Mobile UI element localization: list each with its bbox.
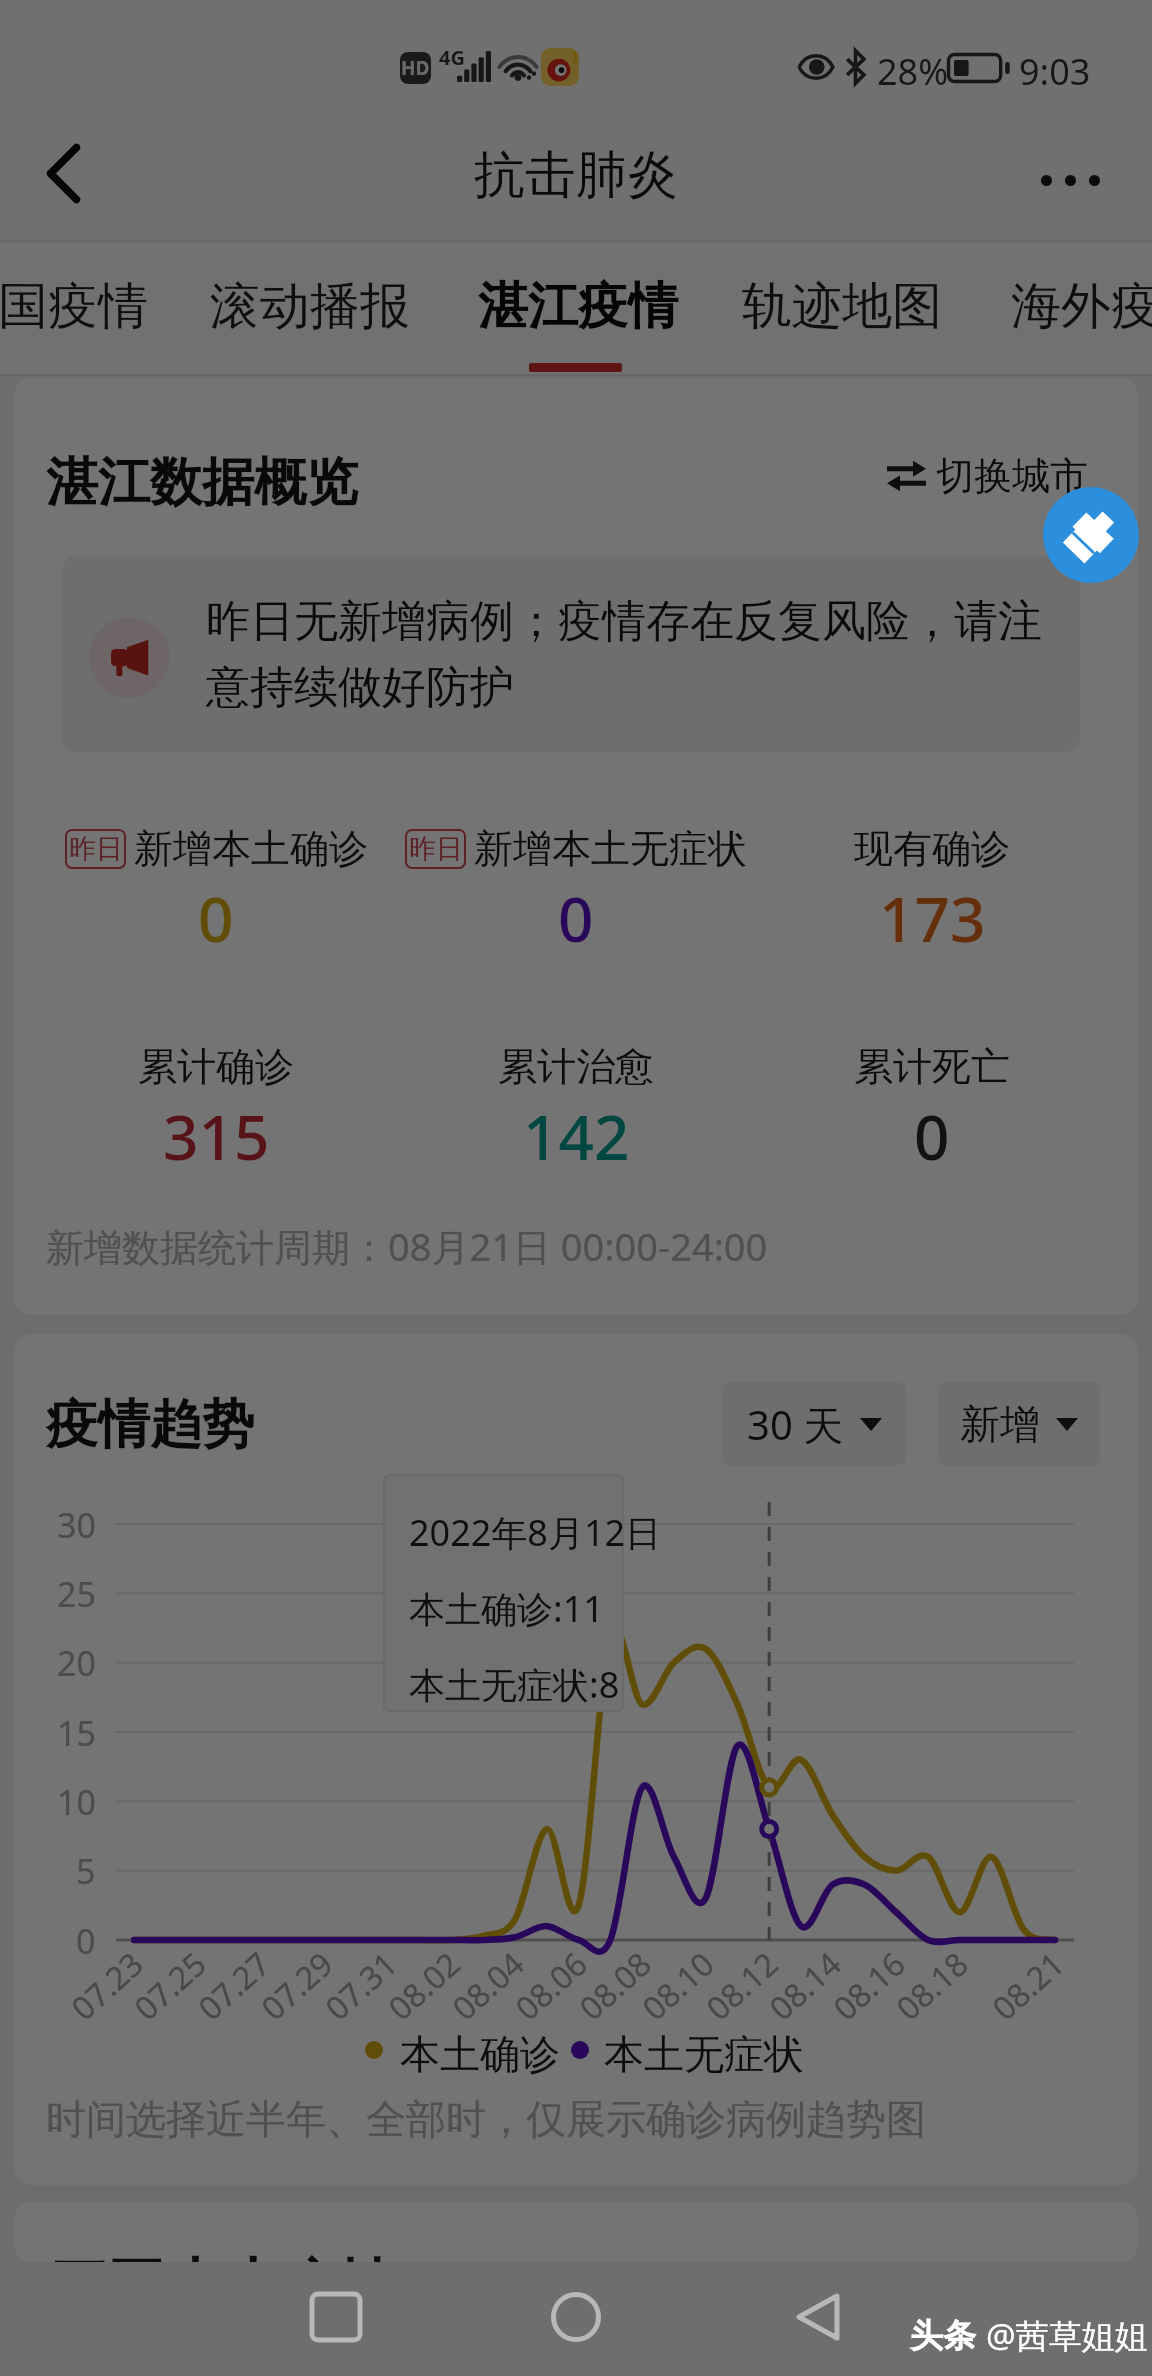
staticText: 25 — [57, 1571, 96, 1617]
staticText: 本土确诊:11 — [409, 1584, 604, 1633]
staticText: 0 — [914, 1094, 950, 1178]
staticText: 三亚本土疫情 — [50, 2250, 398, 2262]
staticText: 08.06 — [506, 1942, 596, 2030]
button[interactable]: Clear cache — [1043, 487, 1139, 583]
staticText: @茜草姐姐 — [986, 2313, 1148, 2358]
staticText: 30 天 — [747, 1397, 844, 1452]
staticText: 5 — [76, 1848, 96, 1894]
staticText: 0 — [558, 876, 594, 960]
staticText: 08.18 — [887, 1942, 977, 2030]
staticText: 本土无症状 — [604, 2029, 804, 2079]
staticText: 08.21 — [983, 1942, 1073, 2030]
staticText: 累计确诊 — [138, 1042, 294, 1091]
staticText: 昨日 — [409, 832, 463, 866]
staticText: 07.29 — [252, 1942, 342, 2030]
staticText: 15 — [57, 1710, 96, 1756]
button[interactable]: 滚动播报 — [190, 243, 430, 374]
staticText: 08.08 — [570, 1942, 660, 2030]
staticText: 07.27 — [189, 1942, 279, 2030]
staticText: 9:03 — [1019, 47, 1091, 96]
staticText: 本土确诊 — [400, 2029, 560, 2079]
button[interactable]: Recent apps — [281, 2262, 391, 2372]
staticText: 新增 — [960, 1399, 1040, 1449]
button[interactable]: 海外疫 — [966, 243, 1152, 374]
staticText: 本土无症状:8 — [409, 1660, 620, 1709]
staticText: 抗击肺炎 — [474, 143, 678, 207]
staticText: 昨日无新增病例；疫情存在反复风险，请注意持续做好防护 — [206, 594, 1054, 715]
button[interactable]: More options — [1020, 135, 1120, 213]
staticText: 国疫情 — [0, 275, 148, 338]
staticText: 142 — [523, 1094, 630, 1178]
staticText: 0 — [198, 876, 234, 960]
button[interactable]: 湛江疫情 — [458, 243, 698, 374]
staticText: 现有确诊 — [854, 824, 1010, 873]
staticText: 28% — [877, 47, 949, 96]
button[interactable]: 30 天 — [722, 1382, 906, 1466]
staticText: 湛江疫情 — [478, 275, 678, 338]
staticText: 08.12 — [697, 1942, 787, 2030]
staticText: 轨迹地图 — [742, 275, 942, 338]
button[interactable]: 国疫情 — [0, 243, 193, 374]
staticText: 累计治愈 — [498, 1042, 654, 1091]
staticText: 滚动播报 — [210, 275, 410, 338]
staticText: 累计死亡 — [854, 1042, 1010, 1091]
staticText: 海外疫 — [1011, 275, 1152, 338]
staticText: 08.16 — [824, 1942, 914, 2030]
staticText: 疫情趋势 — [46, 1392, 254, 1458]
button[interactable]: Home — [521, 2262, 631, 2372]
staticText: 新增本土确诊 — [134, 824, 368, 873]
staticText: 08.10 — [633, 1942, 723, 2030]
staticText: 30 — [57, 1502, 96, 1548]
staticText: 0 — [76, 1918, 96, 1964]
staticText: 湛江数据概览 — [46, 450, 358, 516]
staticText: 昨日 — [69, 832, 123, 866]
staticText: 新增数据统计周期：08月21日 00:00-24:00 — [46, 1220, 768, 1272]
button[interactable]: 切换城市 — [887, 448, 1088, 504]
staticText: 315 — [163, 1094, 270, 1178]
button[interactable]: Back — [763, 2262, 873, 2372]
staticText: 2022年8月12日 — [409, 1508, 662, 1557]
staticText: 头条 — [910, 2315, 976, 2357]
staticText: 08.14 — [760, 1942, 850, 2030]
staticText: 4G — [439, 44, 465, 71]
staticText: 时间选择近半年、全部时，仅展示确诊病例趋势图 — [46, 2094, 926, 2144]
button[interactable]: 新增 — [938, 1382, 1100, 1466]
staticText: 07.23 — [62, 1942, 152, 2030]
staticText: 08.02 — [379, 1942, 469, 2030]
staticText: HD — [401, 55, 430, 81]
staticText: 切换城市 — [936, 452, 1088, 500]
staticText: 07.31 — [316, 1942, 406, 2030]
staticText: 10 — [57, 1779, 96, 1825]
staticText: 20 — [57, 1640, 96, 1686]
staticText: 07.25 — [125, 1942, 215, 2030]
button[interactable]: Back — [15, 125, 111, 221]
staticText: 08.04 — [443, 1942, 533, 2030]
button[interactable]: 轨迹地图 — [722, 243, 962, 374]
staticText: 173 — [879, 876, 986, 960]
staticText: 新增本土无症状 — [474, 824, 747, 873]
